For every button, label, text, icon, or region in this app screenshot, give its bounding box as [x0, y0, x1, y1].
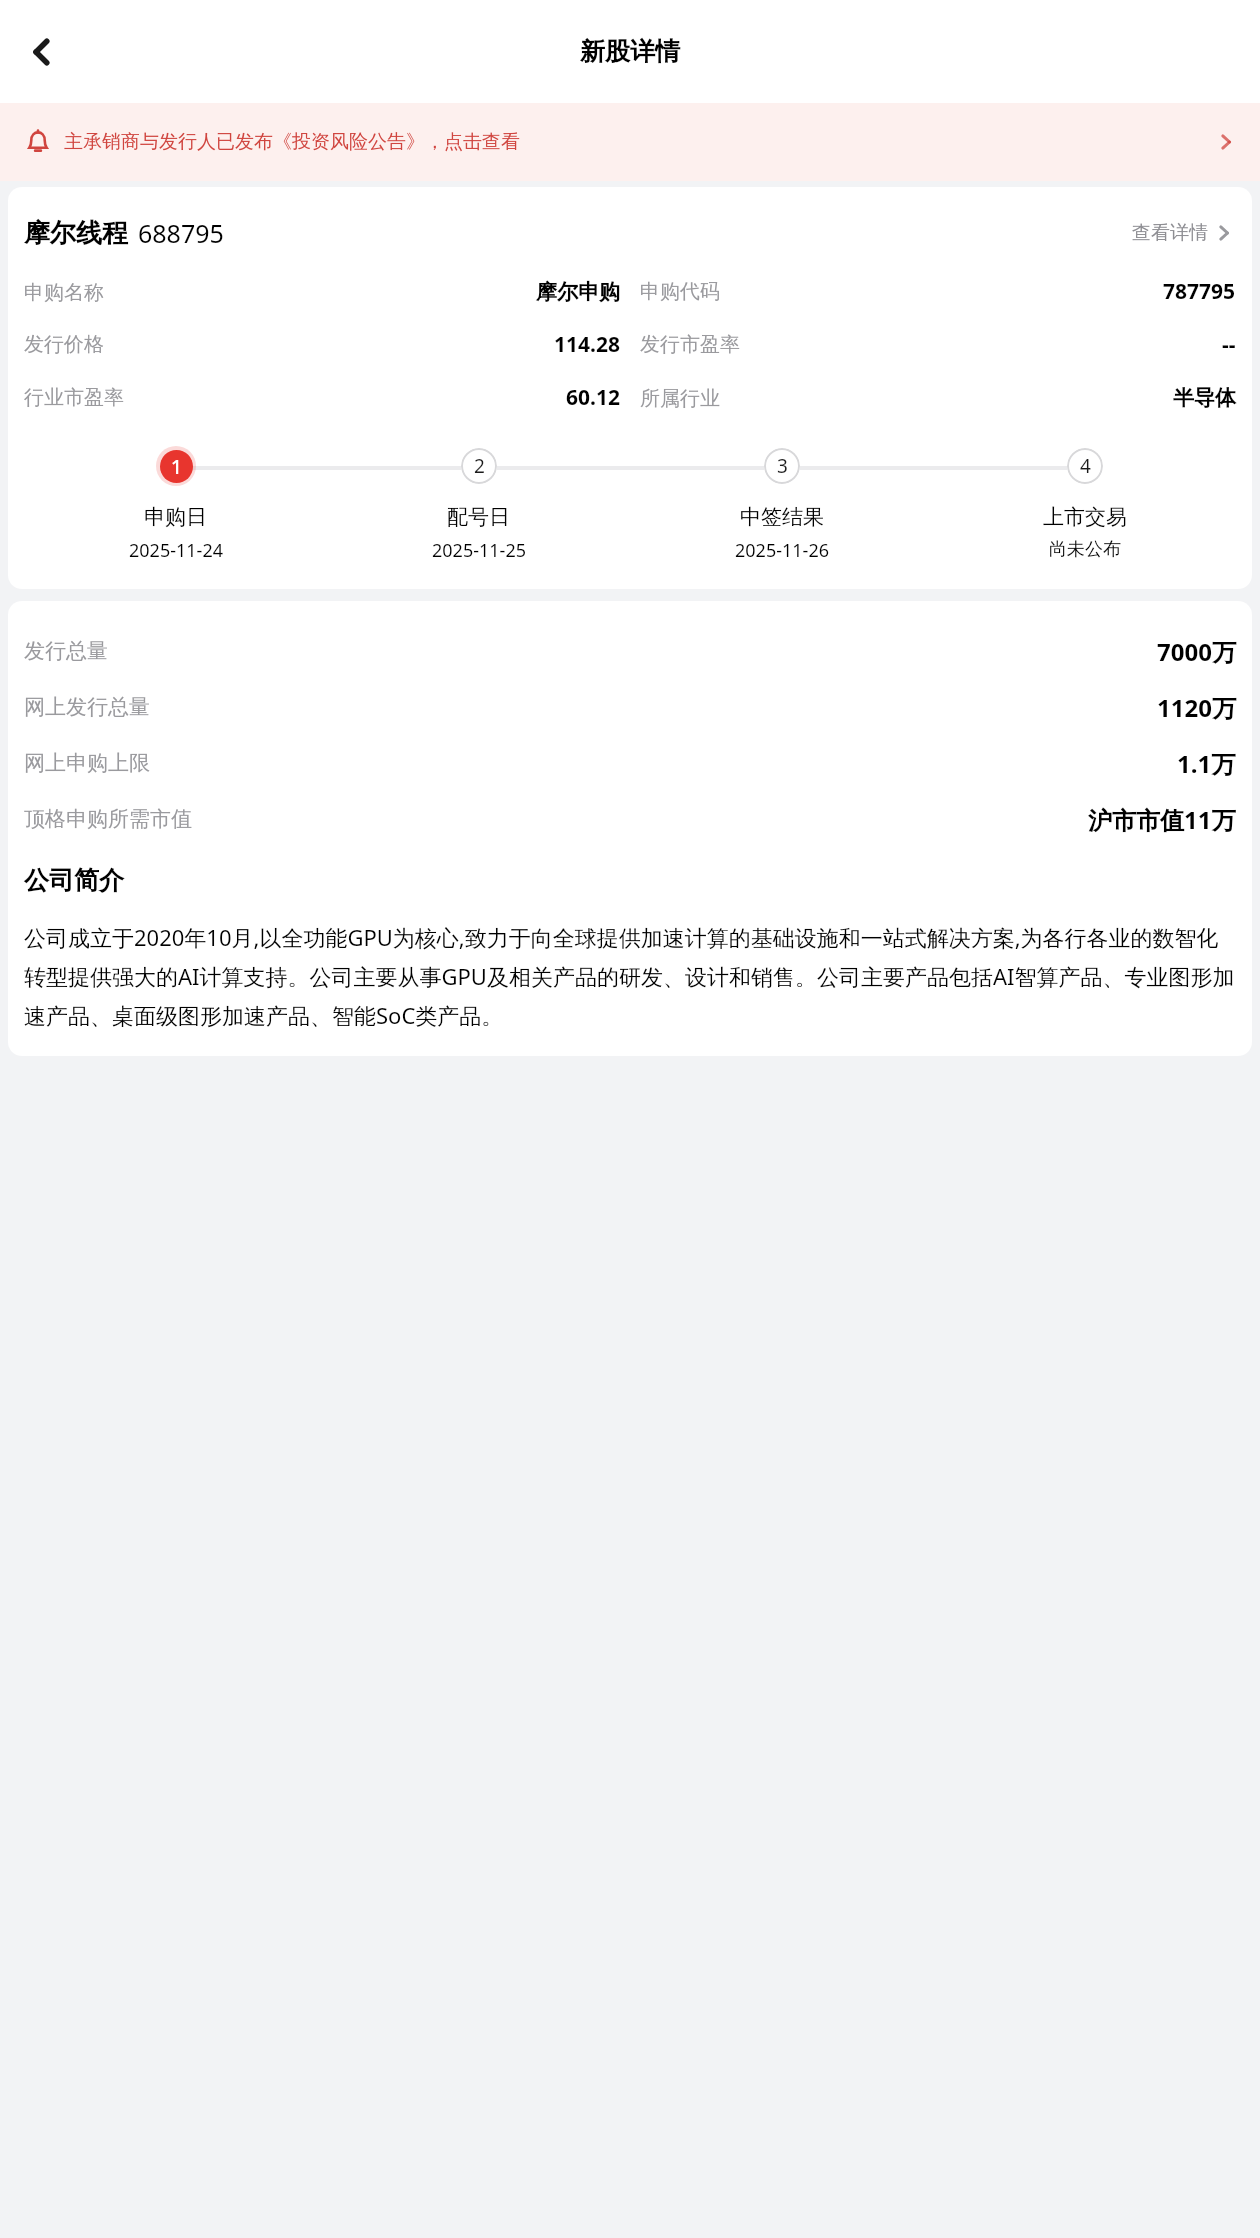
- button[interactable]: 主承销商与发行人已发布《投资风险公告》，点击查看: [0, 103, 1260, 181]
- staticText: 60.12: [566, 383, 620, 412]
- button[interactable]: Back: [14, 24, 70, 80]
- staticText: 1: [171, 454, 182, 480]
- staticText: 2025-11-24: [129, 538, 223, 563]
- staticText: --: [1222, 330, 1236, 359]
- staticText: 主承销商与发行人已发布《投资风险公告》，点击查看: [64, 130, 520, 154]
- staticText: 1.1万: [1177, 747, 1236, 780]
- staticText: 申购日: [144, 504, 207, 530]
- staticText: 发行价格: [24, 332, 104, 357]
- staticText: 查看详情: [1132, 221, 1208, 245]
- staticText: 沪市市值11万: [1088, 803, 1236, 836]
- staticText: 4: [1080, 453, 1091, 479]
- staticText: 688795: [138, 216, 224, 250]
- staticText: 网上申购上限: [24, 750, 150, 776]
- staticText: 787795: [1163, 277, 1236, 306]
- staticText: 1120万: [1157, 691, 1236, 724]
- staticText: 发行总量: [24, 638, 108, 664]
- staticText: 7000万: [1157, 635, 1236, 668]
- staticText: 上市交易: [1043, 504, 1127, 530]
- staticText: 2: [474, 453, 485, 479]
- staticText: 申购代码: [640, 279, 720, 304]
- staticText: 配号日: [447, 504, 510, 530]
- staticText: 新股详情: [580, 36, 680, 67]
- staticText: 摩尔申购: [536, 279, 620, 305]
- staticText: 2025-11-26: [735, 538, 829, 563]
- staticText: 网上发行总量: [24, 694, 150, 720]
- staticText: 半导体: [1173, 385, 1236, 411]
- staticText: 行业市盈率: [24, 385, 124, 410]
- staticText: 公司简介: [24, 865, 124, 896]
- staticText: 114.28: [554, 330, 620, 359]
- staticText: 公司成立于2020年10月,以全功能GPU为核心,致力于向全球提供加速计算的基础…: [24, 922, 1236, 1030]
- staticText: 中签结果: [740, 504, 824, 530]
- staticText: 申购名称: [24, 280, 104, 305]
- staticText: 摩尔线程: [24, 217, 128, 250]
- staticText: 3: [777, 453, 788, 479]
- staticText: 尚未公布: [1049, 538, 1121, 561]
- staticText: 所属行业: [640, 386, 720, 411]
- button[interactable]: 查看详情: [1128, 215, 1236, 251]
- staticText: 发行市盈率: [640, 332, 740, 357]
- staticText: 顶格申购所需市值: [24, 806, 192, 832]
- staticText: 2025-11-25: [432, 538, 526, 563]
